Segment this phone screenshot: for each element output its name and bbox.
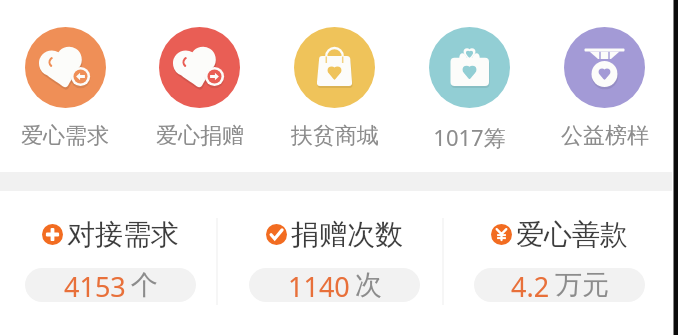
staticText: 爱心需求 <box>21 122 109 150</box>
staticText: 4153 <box>64 268 126 302</box>
staticText: 1140 <box>288 268 350 302</box>
button[interactable]: 爱心需求 <box>0 0 132 150</box>
staticText: 扶贫商城 <box>291 122 379 150</box>
button[interactable]: 1017筹 <box>402 0 537 152</box>
staticText: 捐赠次数 <box>291 217 403 252</box>
staticText: 对接需求 <box>67 217 179 252</box>
button[interactable]: 捐赠次数 <box>222 191 447 302</box>
staticText: 爱心善款 <box>516 217 628 252</box>
staticText: 爱心捐赠 <box>156 122 244 150</box>
staticText: 次 <box>355 268 382 302</box>
staticText: 1017筹 <box>433 122 506 152</box>
button[interactable]: 公益榜样 <box>537 0 672 150</box>
staticText: 个 <box>131 268 158 302</box>
button[interactable]: 爱心捐赠 <box>132 0 267 150</box>
button[interactable]: 对接需求 <box>0 191 222 302</box>
staticText: 4.2 <box>511 268 550 302</box>
button[interactable]: 爱心善款 <box>447 191 672 302</box>
staticText: 公益榜样 <box>561 122 649 150</box>
button[interactable]: 扶贫商城 <box>267 0 402 150</box>
staticText: 万元 <box>555 268 609 302</box>
